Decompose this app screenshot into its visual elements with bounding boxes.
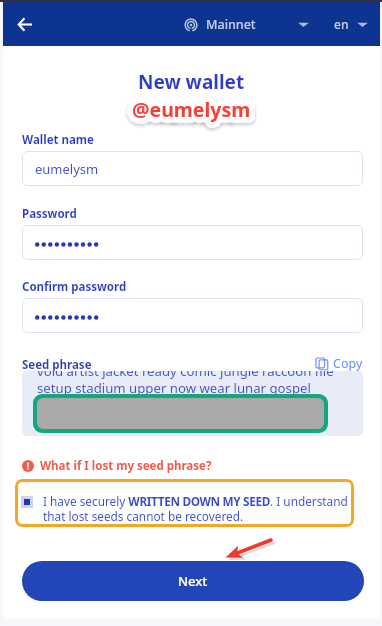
staticText: Seed phrase [22, 357, 92, 373]
staticText: Mainnet [206, 16, 256, 33]
button[interactable]: en [334, 10, 368, 38]
staticText: @eumelysm [132, 98, 251, 125]
staticText: I have securely WRITTEN DOWN MY SEED. I … [43, 493, 351, 524]
staticText: void artist jacket ready comic jungle ra… [37, 371, 334, 412]
button[interactable]: What if I lost my seed phrase? [22, 458, 212, 474]
staticText: @eumelysm [132, 98, 251, 125]
staticText: @eumelysm [132, 96, 251, 123]
staticText: @eumelysm [132, 98, 251, 125]
staticText: @eumelysm [132, 96, 251, 123]
staticText: Next [178, 572, 208, 590]
staticText: eumelysm [35, 160, 99, 178]
button[interactable]: Mainnet [182, 10, 258, 39]
staticText: Copy [333, 355, 363, 372]
staticText: @eumelysm [132, 98, 251, 125]
button[interactable] [22, 298, 363, 333]
staticText: What if I lost my seed phrase? [40, 458, 212, 474]
button[interactable] [22, 225, 363, 260]
staticText: en [334, 16, 349, 32]
button[interactable]: Back [10, 9, 40, 39]
staticText: @eumelysm [132, 96, 251, 123]
staticText: Confirm password [22, 279, 127, 295]
button[interactable]: eumelysm [22, 151, 363, 186]
staticText: New wallet [138, 69, 245, 95]
staticText: Password [22, 206, 77, 222]
staticText: Wallet name [22, 132, 94, 148]
button[interactable]: I have securely WRITTEN DOWN MY SEED. I … [15, 479, 354, 527]
button[interactable]: Choose network [294, 15, 312, 33]
button[interactable]: Copy [316, 355, 363, 372]
button[interactable]: Next [22, 561, 364, 601]
